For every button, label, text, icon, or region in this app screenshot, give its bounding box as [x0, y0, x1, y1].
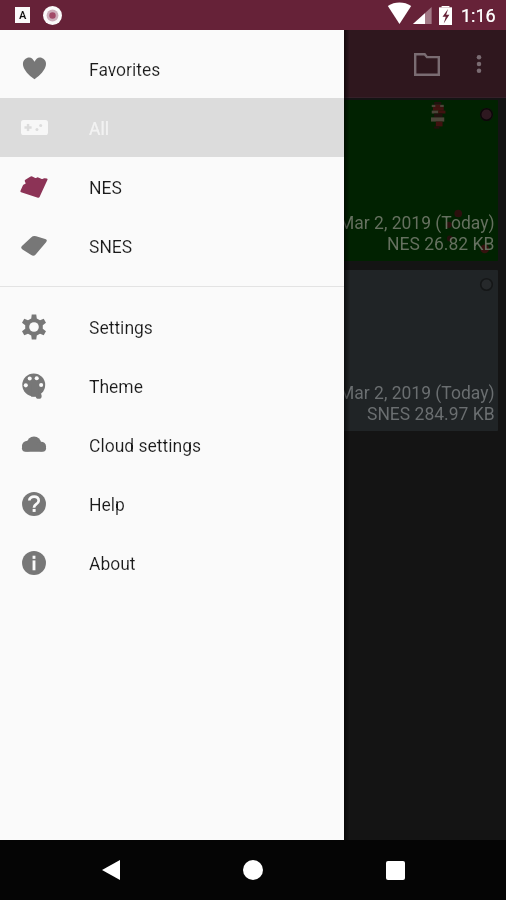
button[interactable]: Home: [182, 840, 324, 900]
staticText: Settings: [89, 318, 153, 339]
staticText: NES: [89, 178, 122, 199]
button[interactable]: Back: [40, 840, 182, 900]
staticText: SNES 284.97 KB: [367, 404, 495, 425]
staticText: SNES: [89, 237, 133, 258]
staticText: Help: [89, 495, 125, 516]
button[interactable]: Open folder: [403, 40, 451, 88]
button[interactable]: All: [0, 98, 344, 157]
button[interactable]: NES: [0, 157, 344, 216]
button[interactable]: About: [0, 533, 344, 592]
button[interactable]: Help: [0, 474, 344, 533]
button[interactable]: Mar 2, 2019 (Today): [8, 100, 249, 261]
staticText: 1:16: [461, 5, 496, 26]
staticText: A: [19, 9, 27, 22]
staticText: All: [89, 119, 109, 140]
button[interactable]: Recent apps: [324, 840, 466, 900]
staticText: Favorites: [89, 60, 161, 81]
staticText: Mar 2, 2019 (Today): [339, 383, 495, 404]
button[interactable]: Favorites: [0, 39, 344, 98]
staticText: Mar 2, 2019 (Today): [339, 213, 495, 234]
button[interactable]: SNES: [0, 216, 344, 275]
button[interactable]: More options: [455, 40, 503, 88]
button[interactable]: Mar 2, 2019 (Today): [257, 100, 498, 261]
staticText: Theme: [89, 377, 143, 398]
button[interactable]: Theme: [0, 356, 344, 415]
button[interactable]: Mar 2, 2019 (Today): [8, 270, 249, 431]
button[interactable]: Settings: [0, 297, 344, 356]
staticText: Cloud settings: [89, 436, 202, 457]
staticText: Mar 2, 2019 (Today): [90, 383, 246, 404]
staticText: About: [89, 554, 136, 575]
button[interactable]: Cloud settings: [0, 415, 344, 474]
button[interactable]: Mar 2, 2019 (Today): [257, 270, 498, 431]
staticText: NES 26.82 KB: [387, 234, 495, 255]
